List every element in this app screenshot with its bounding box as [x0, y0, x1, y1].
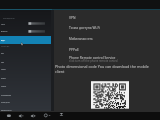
staticText: click turn off the phone remote control — [69, 59, 118, 63]
staticText: Звук — [1, 53, 4, 55]
staticText: Батарея — [1, 78, 6, 80]
button[interactable] — [0, 66, 51, 74]
button[interactable] — [53, 34, 160, 44]
button[interactable] — [0, 58, 51, 66]
button[interactable]: Volume up — [28, 112, 37, 119]
staticText: Память — [1, 69, 6, 71]
staticText: Приложения — [1, 94, 11, 96]
button[interactable] — [0, 28, 51, 36]
button[interactable] — [53, 52, 160, 62]
button[interactable] — [0, 20, 51, 28]
button[interactable] — [0, 83, 51, 91]
button[interactable] — [0, 75, 51, 83]
staticText: Bluetooth — [1, 31, 8, 33]
button[interactable]: Photo dimensional code You can download … — [55, 64, 152, 73]
staticText: Личные данные — [1, 102, 10, 103]
button[interactable]: Volume down — [16, 112, 25, 119]
button[interactable]: Back — [6, 112, 15, 119]
staticText: УСТРОЙСТВО — [1, 46, 10, 48]
staticText: Аккаунты — [1, 86, 7, 88]
button[interactable] — [0, 91, 51, 99]
staticText: Безопасность — [1, 109, 12, 111]
staticText: VPN — [69, 15, 76, 19]
button[interactable] — [0, 50, 51, 58]
staticText: Photo dimensional code You can download … — [55, 64, 152, 73]
staticText: Мобильная сеть — [69, 37, 93, 41]
staticText: Ещё... — [1, 39, 6, 41]
button[interactable] — [53, 11, 160, 21]
staticText: Точка доступа Wi-Fi — [69, 25, 100, 29]
staticText: Phone Remote control Service — [69, 55, 116, 59]
button[interactable] — [0, 98, 51, 106]
staticText: Wi-Fi — [1, 23, 5, 25]
staticText: БЕСПРОВОДНЫЕ СЕТИ — [3, 18, 15, 19]
button[interactable]: Hide navigation bar — [57, 112, 66, 119]
staticText: Экран — [1, 62, 4, 63]
button[interactable] — [53, 22, 160, 32]
button[interactable] — [0, 36, 51, 44]
button[interactable] — [0, 106, 51, 114]
button[interactable] — [53, 44, 160, 54]
button[interactable]: Power — [42, 112, 51, 119]
staticText: PPPoE — [69, 47, 79, 51]
